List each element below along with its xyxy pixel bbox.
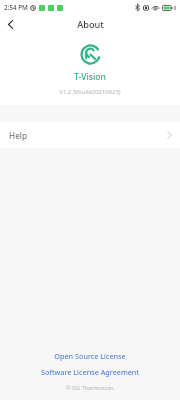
staticText: Software License Agreement [41, 367, 139, 377]
staticText: 2:54 PM [4, 3, 28, 12]
button[interactable]: Open Source License [46, 349, 134, 363]
staticText: T-Vision [74, 71, 106, 83]
button[interactable]: Back [0, 14, 20, 34]
button[interactable]: Software License Agreement [33, 365, 147, 379]
button[interactable]: Help [0, 122, 180, 148]
staticText: © DG Thermoscan [66, 384, 114, 391]
staticText: Help [9, 130, 27, 141]
staticText: Open Source License [54, 351, 126, 361]
staticText: V1.2.3(build20210623) [59, 88, 121, 96]
staticText: About [77, 18, 104, 31]
